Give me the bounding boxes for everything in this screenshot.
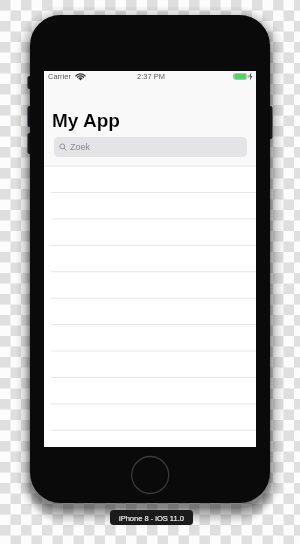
staticText: Carrier — [48, 72, 71, 80]
staticText: My App — [52, 110, 120, 131]
staticText: iPhone 8 - iOS 11.0 — [119, 514, 184, 522]
button[interactable] — [44, 271, 256, 297]
button[interactable] — [44, 297, 256, 323]
staticText: 2:37 PM — [137, 72, 165, 80]
button[interactable] — [44, 323, 256, 349]
button[interactable] — [44, 427, 256, 453]
button[interactable]: Zoek — [54, 137, 247, 157]
button[interactable] — [44, 349, 256, 375]
button[interactable] — [44, 375, 256, 401]
other: Wi-Fi — [76, 73, 85, 80]
button[interactable] — [44, 167, 256, 193]
button[interactable] — [44, 245, 256, 271]
button[interactable] — [44, 401, 256, 427]
staticText: Zoek — [70, 142, 91, 152]
